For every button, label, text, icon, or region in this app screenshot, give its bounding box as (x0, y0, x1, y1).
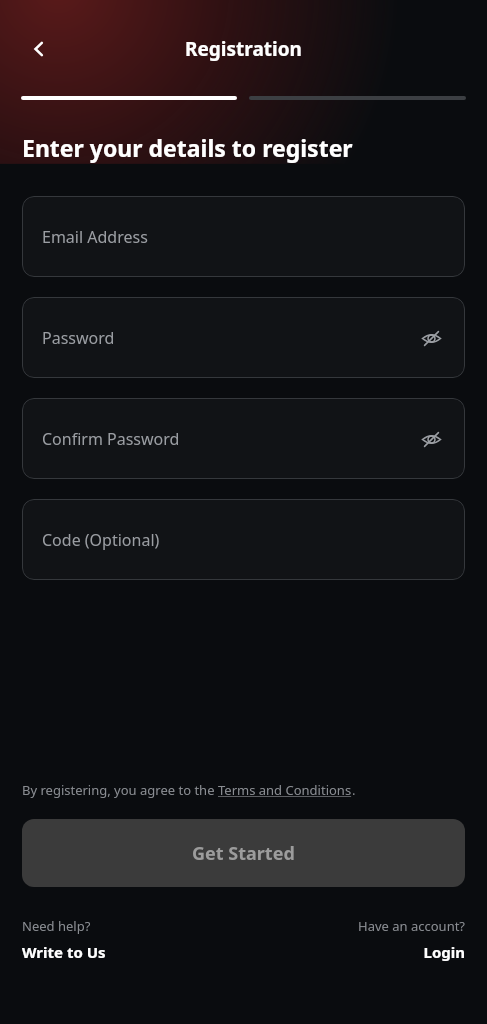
staticText: Login (423, 942, 465, 962)
button[interactable]: Get Started (22, 819, 465, 887)
button[interactable]: Need help? (22, 917, 243, 962)
staticText: Have an account? (358, 917, 465, 935)
button[interactable]: Terms and Conditions (218, 781, 352, 799)
staticText: Enter your details to register (22, 132, 353, 163)
staticText: Need help? (22, 917, 91, 935)
staticText: Email Address (42, 226, 148, 248)
button[interactable]: Show password (415, 423, 447, 455)
staticText: Password (42, 327, 115, 349)
staticText: Code (Optional) (42, 529, 160, 551)
staticText: By registering, you agree to the (22, 781, 218, 799)
button[interactable]: Show password (415, 322, 447, 354)
button[interactable]: Have an account? (243, 917, 465, 962)
button[interactable]: Code (Optional) (22, 499, 465, 580)
staticText: . (352, 781, 356, 799)
button[interactable]: Back (18, 28, 60, 70)
button[interactable]: Password (22, 297, 465, 378)
staticText: Write to Us (22, 942, 106, 962)
staticText: Registration (185, 36, 302, 62)
staticText: Get Started (192, 841, 295, 866)
staticText: Terms and Conditions (218, 781, 352, 799)
staticText: Confirm Password (42, 428, 180, 450)
button[interactable]: Email Address (22, 196, 465, 277)
button[interactable]: Confirm Password (22, 398, 465, 479)
